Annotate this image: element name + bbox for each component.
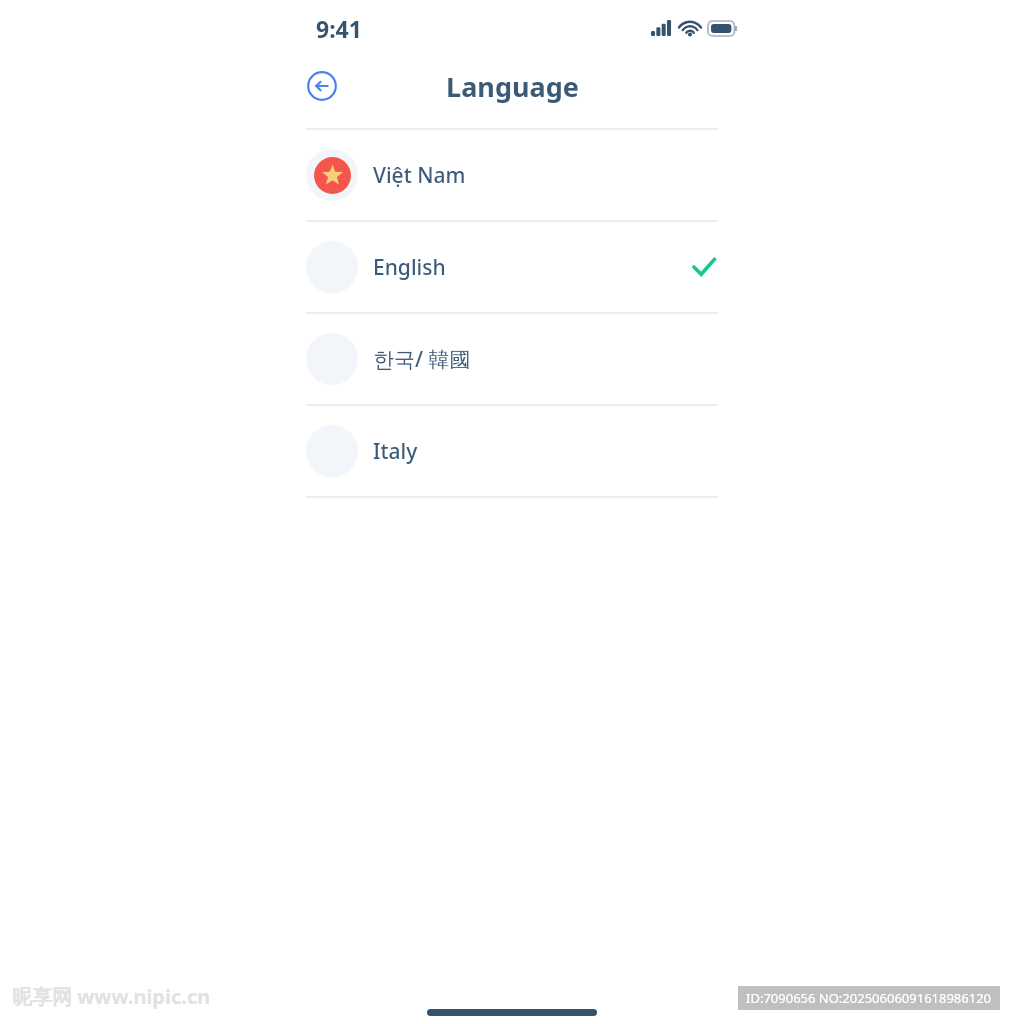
button[interactable]: Việt Nam — [0, 130, 1024, 220]
staticText: 한국/ 韓國 — [373, 345, 718, 374]
staticText: ID:7090656 NO:20250606091618986120 — [746, 989, 992, 1007]
staticText: Italy — [373, 437, 718, 466]
staticText: English — [373, 253, 690, 282]
button[interactable]: Back — [306, 70, 338, 102]
staticText: Việt Nam — [373, 161, 718, 190]
staticText: 昵享网 www.nipic.cn — [12, 983, 211, 1010]
button[interactable]: English — [0, 222, 1024, 312]
button[interactable]: Italy — [0, 406, 1024, 496]
button[interactable]: 한국/ 韓國 — [0, 314, 1024, 404]
staticText: 9:41 — [316, 13, 362, 44]
staticText: Language — [446, 68, 579, 105]
